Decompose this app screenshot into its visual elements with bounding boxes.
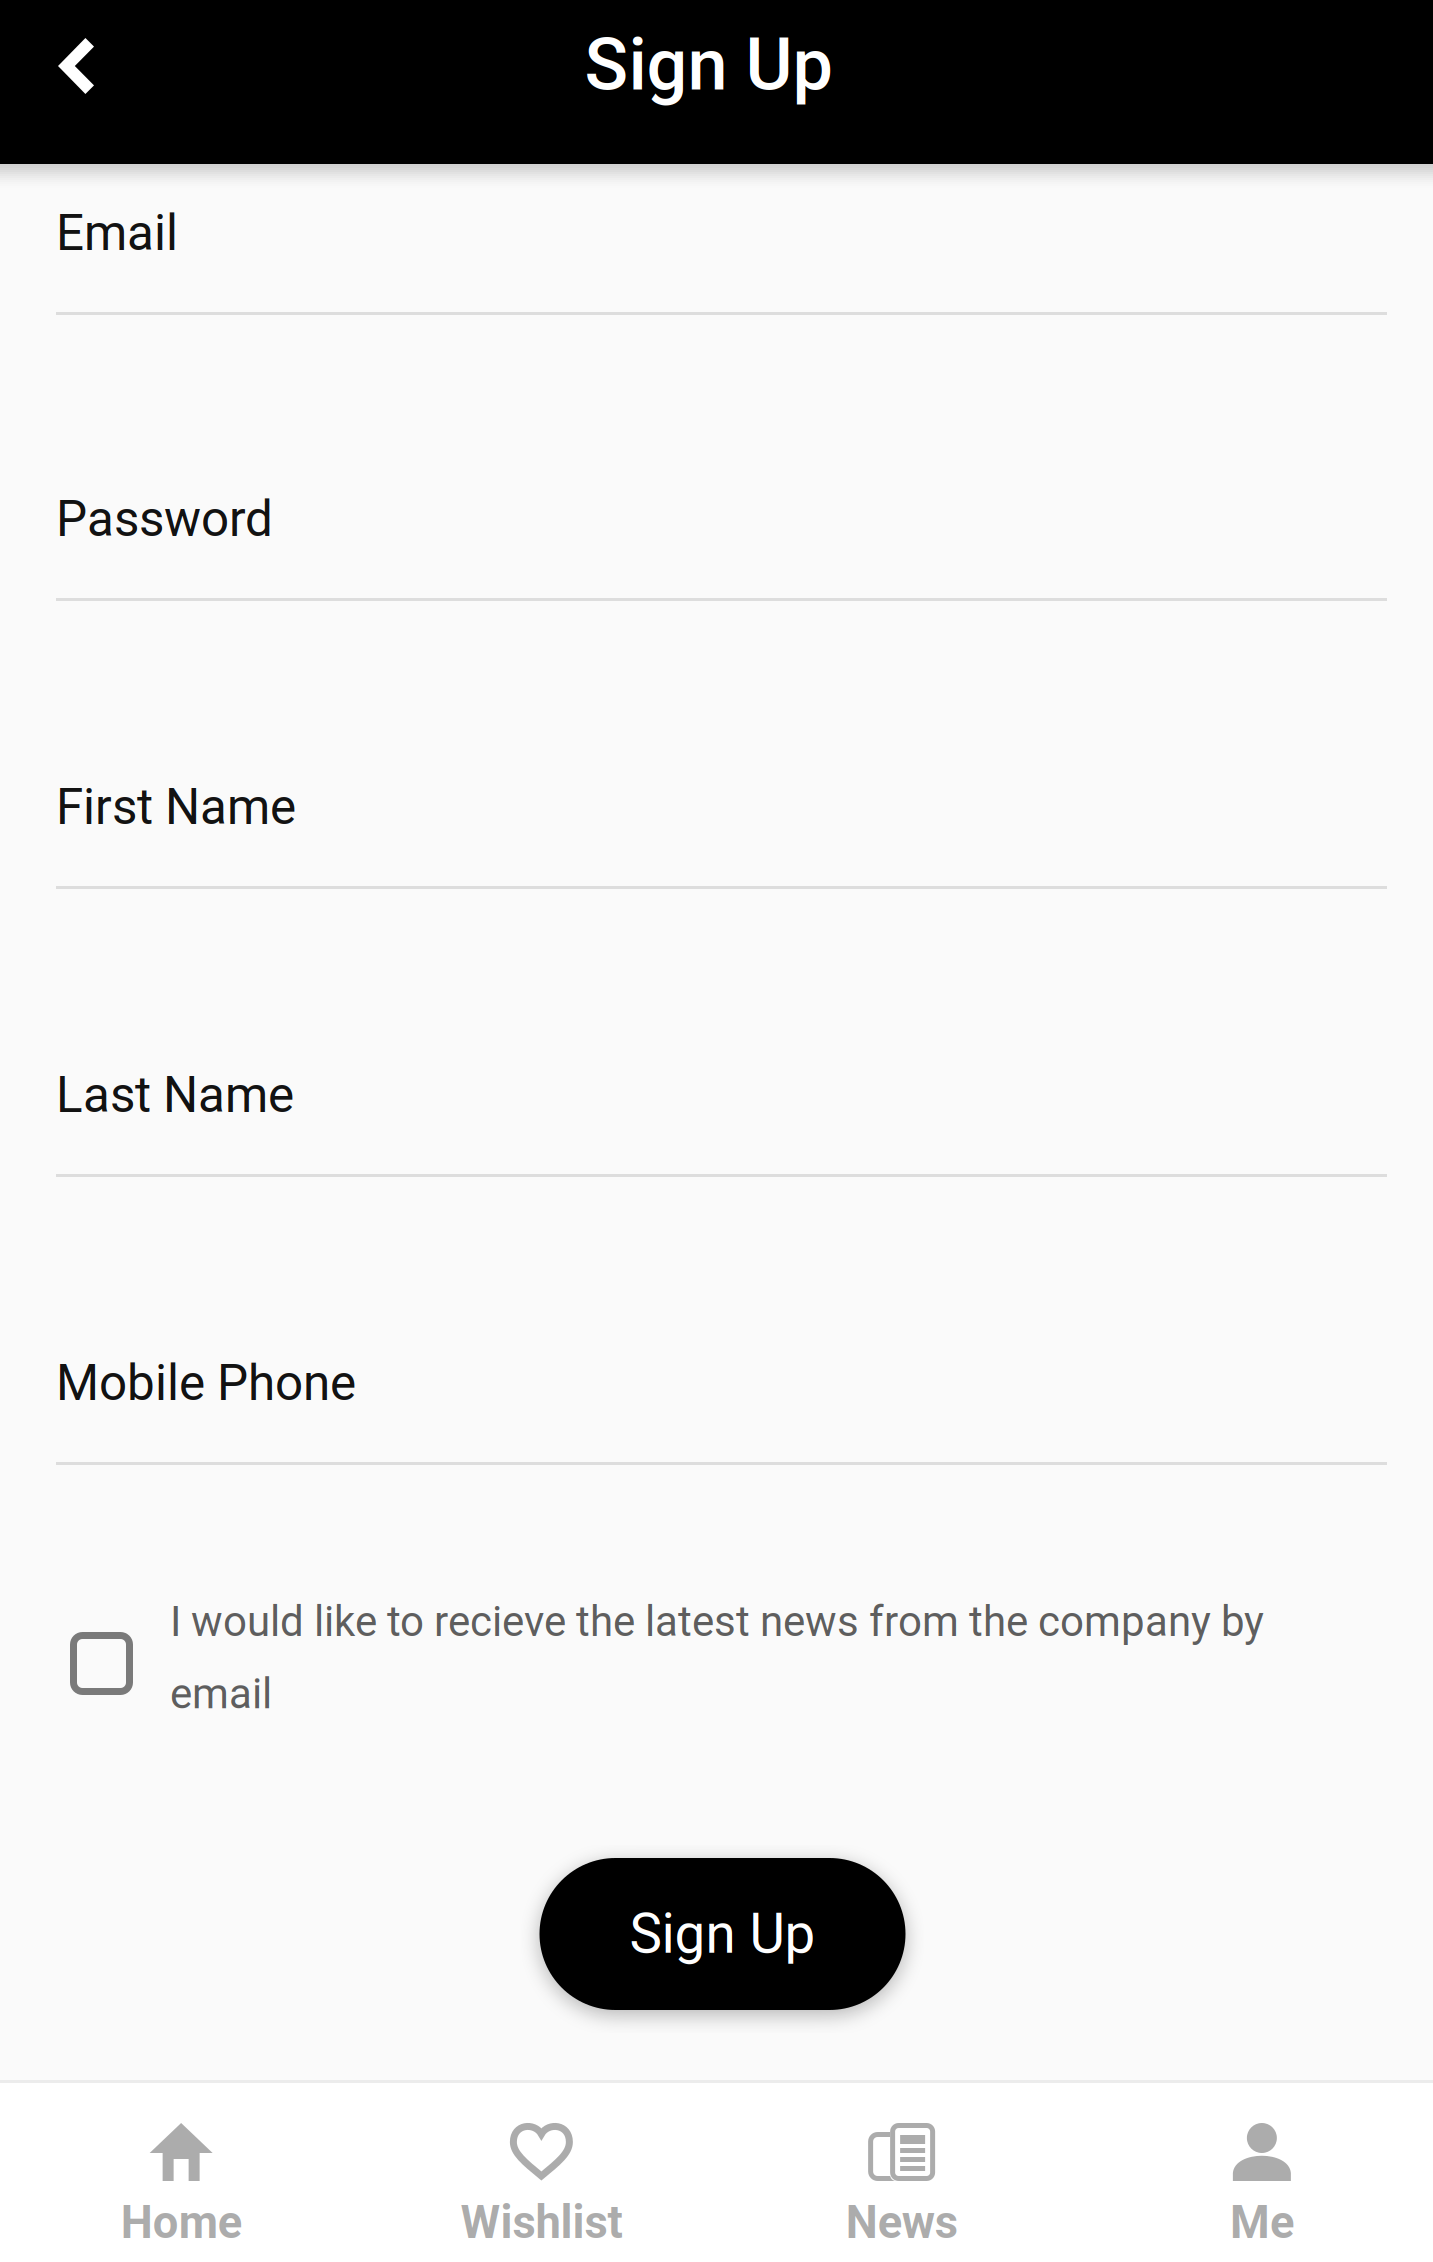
staticText: I would like to recieve the latest news … — [170, 1597, 1264, 1646]
button[interactable]: Back — [0, 0, 130, 164]
button[interactable]: Email — [56, 164, 1377, 315]
button[interactable]: Me — [1075, 2083, 1433, 2262]
button[interactable]: I would like to recieve the latest news … — [56, 1465, 1377, 1793]
staticText: Sign Up — [584, 23, 832, 107]
button[interactable]: Home — [0, 2083, 358, 2262]
button[interactable]: Last Name — [56, 889, 1377, 1177]
staticText: Password — [56, 490, 273, 548]
staticText: Sign Up — [629, 1902, 815, 1966]
staticText: email — [170, 1669, 272, 1718]
staticText: Mobile Phone — [56, 1354, 356, 1412]
staticText: First Name — [56, 778, 296, 836]
staticText: Home — [121, 2196, 242, 2249]
button[interactable]: News — [716, 2083, 1075, 2262]
staticText: Me — [1230, 2196, 1294, 2249]
button[interactable]: Sign Up — [539, 1858, 905, 2010]
staticText: Wishlist — [460, 2196, 622, 2249]
staticText: Email — [56, 204, 178, 262]
staticText: News — [846, 2196, 958, 2249]
button[interactable]: First Name — [56, 601, 1377, 889]
button[interactable]: Password — [56, 315, 1377, 601]
button[interactable]: Wishlist — [358, 2083, 716, 2262]
button[interactable]: Mobile Phone — [56, 1177, 1377, 1465]
staticText: Last Name — [56, 1066, 294, 1124]
